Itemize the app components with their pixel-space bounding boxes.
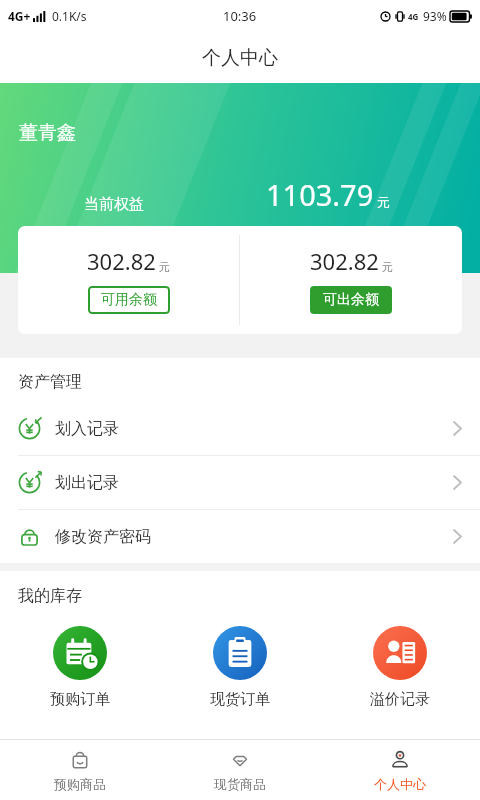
staticText: 溢价记录 xyxy=(370,690,430,709)
staticText: 4G xyxy=(408,11,419,22)
button[interactable]: 可用余额 xyxy=(88,286,170,314)
staticText: 4G+ xyxy=(8,8,31,24)
button[interactable]: Spot goods xyxy=(160,740,320,800)
staticText: 个人中心 xyxy=(374,776,426,792)
staticText: 302.82 xyxy=(310,246,379,276)
staticText: 元 xyxy=(159,260,170,274)
button[interactable]: 划出记录 xyxy=(0,456,480,509)
staticText: 划出记录 xyxy=(55,473,119,493)
staticText: 资产管理 xyxy=(18,372,82,392)
staticText: 0.1K/s xyxy=(52,8,87,24)
button[interactable]: 可出余额 xyxy=(310,286,392,314)
staticText: 现货商品 xyxy=(214,776,266,792)
button[interactable]: 预购订单 xyxy=(0,626,160,709)
staticText: 现货订单 xyxy=(210,690,270,709)
staticText: 302.82 xyxy=(87,246,156,276)
staticText: 我的库存 xyxy=(18,586,82,606)
staticText: 元 xyxy=(377,194,390,210)
button[interactable]: Personal center xyxy=(320,740,480,800)
staticText: 预购商品 xyxy=(54,776,106,792)
button[interactable]: Pre-order goods xyxy=(0,740,160,800)
staticText: 10:36 xyxy=(223,7,257,25)
staticText: 当前权益 xyxy=(84,195,144,214)
staticText: 可出余额 xyxy=(323,291,379,309)
staticText: 预购订单 xyxy=(50,690,110,709)
staticText: 董青鑫 xyxy=(19,121,76,145)
staticText: 划入记录 xyxy=(55,419,119,439)
staticText: 93% xyxy=(423,8,447,24)
button[interactable]: 划入记录 xyxy=(0,402,480,455)
button[interactable]: 溢价记录 xyxy=(320,626,480,709)
staticText: 元 xyxy=(382,260,393,274)
staticText: 可用余额 xyxy=(101,291,157,309)
button[interactable]: 修改资产密码 xyxy=(0,510,480,563)
button[interactable]: 现货订单 xyxy=(160,626,320,709)
staticText: 修改资产密码 xyxy=(55,527,151,547)
staticText: 1103.79 xyxy=(266,175,374,214)
staticText: 个人中心 xyxy=(202,46,278,70)
